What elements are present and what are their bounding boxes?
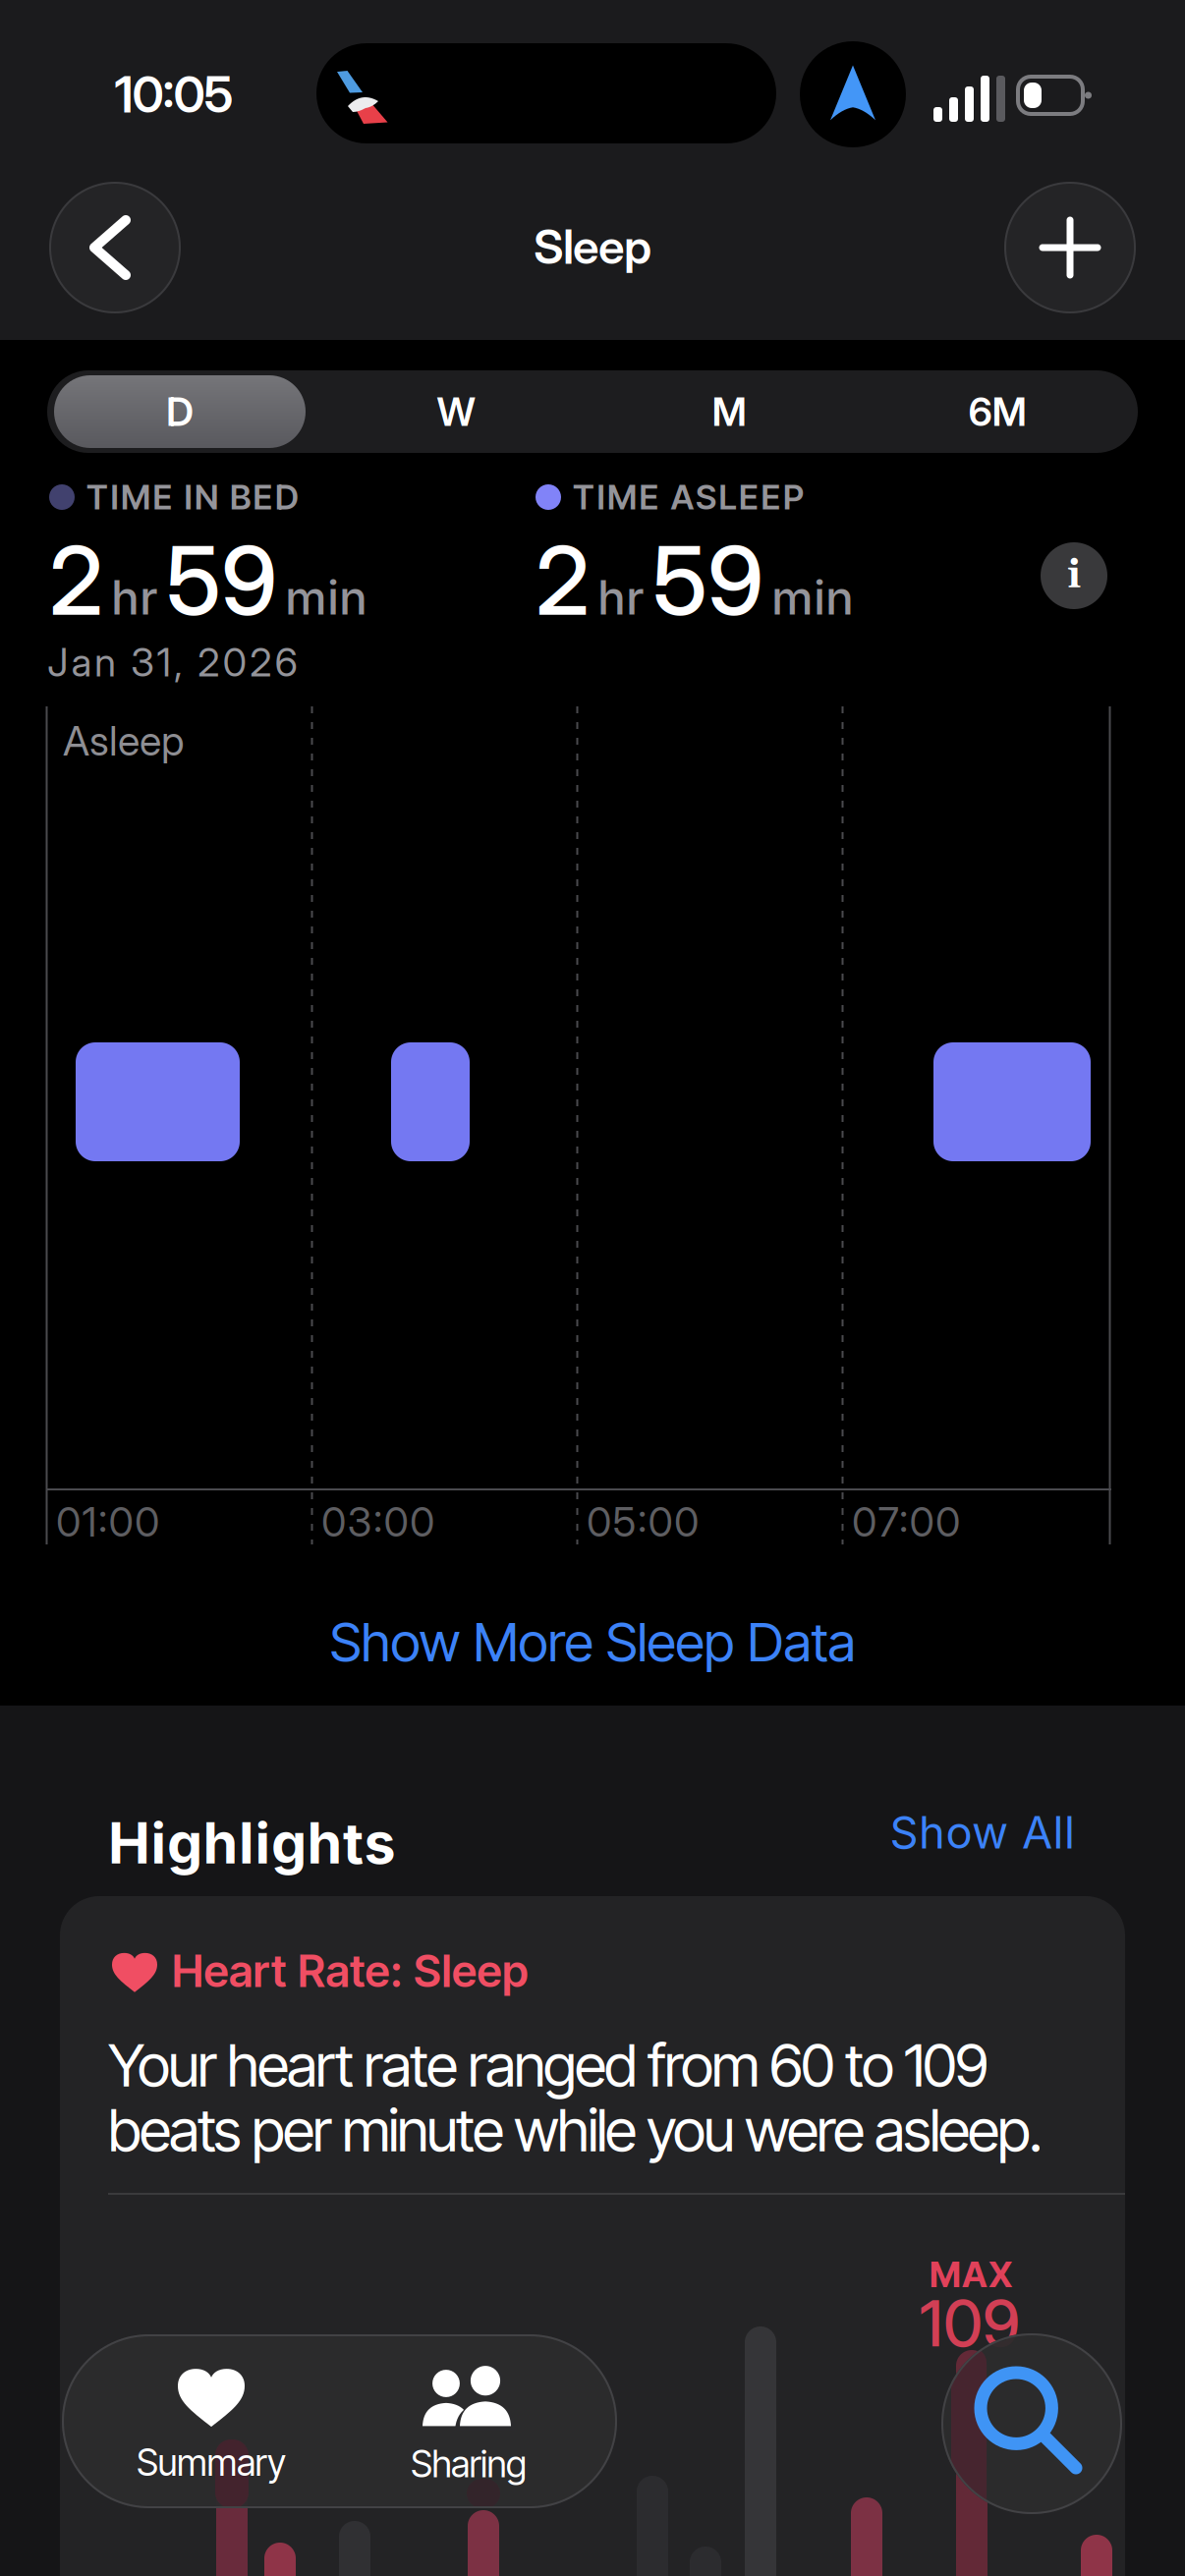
staticText: 05:00 xyxy=(587,1497,699,1546)
staticText: 6M xyxy=(968,388,1026,435)
staticText: Sharing xyxy=(411,2442,527,2486)
staticText: 2 xyxy=(536,523,590,638)
button[interactable]: Sharing xyxy=(340,2334,597,2508)
staticText: W xyxy=(437,388,475,435)
staticText: hr xyxy=(111,569,158,626)
staticText: 2 xyxy=(49,523,103,638)
staticText: 59 xyxy=(166,523,277,638)
staticText: TIME ASLEEP xyxy=(573,476,804,518)
staticText: Sleep xyxy=(534,218,651,275)
button[interactable]: W xyxy=(348,370,564,453)
staticText: 109 xyxy=(920,2285,1020,2362)
staticText: i xyxy=(1067,551,1081,601)
staticText: Asleep xyxy=(63,716,184,765)
staticText: 03:00 xyxy=(321,1497,434,1546)
staticText: Jan 31, 2026 xyxy=(47,638,298,686)
button[interactable]: Search xyxy=(941,2333,1122,2514)
staticText: Heart Rate: Sleep xyxy=(172,1944,529,1998)
staticText: MAX xyxy=(930,2253,1013,2296)
staticText: min xyxy=(285,569,367,626)
button[interactable]: Add Data xyxy=(1005,183,1135,312)
staticText: Your heart rate ranged from 60 to 109 xyxy=(108,2029,988,2101)
staticText: 01:00 xyxy=(56,1497,159,1546)
button[interactable]: 6M xyxy=(889,370,1105,453)
staticText: Show All xyxy=(890,1805,1075,1859)
button[interactable]: M xyxy=(621,370,837,453)
button[interactable]: Heart Rate: Sleep xyxy=(60,1896,1125,2576)
staticText: M xyxy=(712,388,746,435)
staticText: min xyxy=(771,569,854,626)
staticText: beats per minute while you were asleep. xyxy=(108,2094,1043,2166)
staticText: Summary xyxy=(137,2440,286,2485)
staticText: 10:05 xyxy=(114,64,233,124)
button[interactable]: Summary xyxy=(83,2334,340,2508)
staticText: hr xyxy=(597,569,645,626)
button[interactable]: Back xyxy=(50,183,180,312)
staticText: Highlights xyxy=(108,1809,395,1877)
button[interactable]: D xyxy=(54,375,306,448)
button[interactable]: Info xyxy=(1041,542,1107,609)
staticText: 59 xyxy=(652,523,763,638)
staticText: Show More Sleep Data xyxy=(330,1609,855,1674)
staticText: TIME IN BED xyxy=(86,476,299,518)
staticText: 07:00 xyxy=(852,1497,960,1546)
staticText: D xyxy=(166,388,194,435)
button[interactable]: Show All xyxy=(780,1803,1075,1862)
button[interactable]: Show More Sleep Data xyxy=(330,1609,855,1674)
